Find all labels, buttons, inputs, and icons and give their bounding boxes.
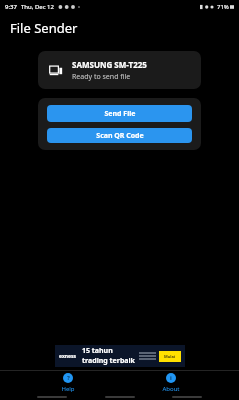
staticText: Thu, Dec 12: [21, 3, 54, 11]
staticText: Ready to send file: [72, 72, 131, 82]
staticText: File Sender: [10, 19, 78, 37]
other: Connected device: [49, 63, 63, 77]
button[interactable]: Scan QR Code: [47, 128, 192, 143]
button[interactable]: Send File: [47, 105, 192, 122]
staticText: About: [162, 385, 180, 393]
staticText: Send File: [104, 109, 136, 119]
staticText: Help: [61, 385, 75, 393]
button[interactable]: ?: [33, 373, 103, 393]
staticText: 71%: [217, 3, 229, 11]
staticText: Scan QR Code: [96, 131, 144, 141]
button[interactable]: exness: [55, 345, 185, 367]
staticText: exness: [59, 353, 77, 360]
staticText: trading terbaik: [82, 356, 135, 366]
staticText: Mulai: [164, 354, 176, 359]
staticText: i: [170, 374, 172, 382]
button[interactable]: Connected device: [38, 51, 201, 89]
staticText: ?: [67, 374, 70, 382]
staticText: 9:37: [5, 3, 17, 11]
staticText: 15 tahun: [82, 346, 113, 356]
button[interactable]: i: [136, 373, 206, 393]
staticText: SAMSUNG SM-T225: [72, 59, 147, 70]
